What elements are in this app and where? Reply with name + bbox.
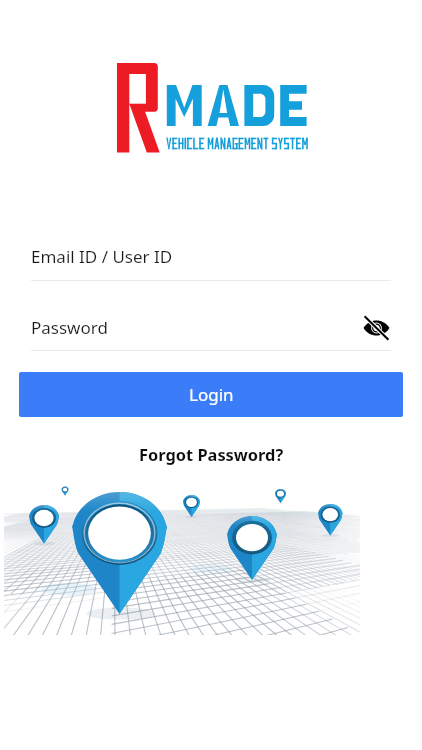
staticText: Login [189, 383, 234, 406]
button[interactable]: Forgot Password? [133, 440, 290, 468]
button[interactable]: Show password [361, 313, 391, 343]
staticText: Email ID / User ID [31, 245, 173, 268]
staticText: Forgot Password? [139, 443, 284, 465]
button[interactable]: Login [19, 372, 403, 417]
staticText: Password [31, 316, 108, 339]
